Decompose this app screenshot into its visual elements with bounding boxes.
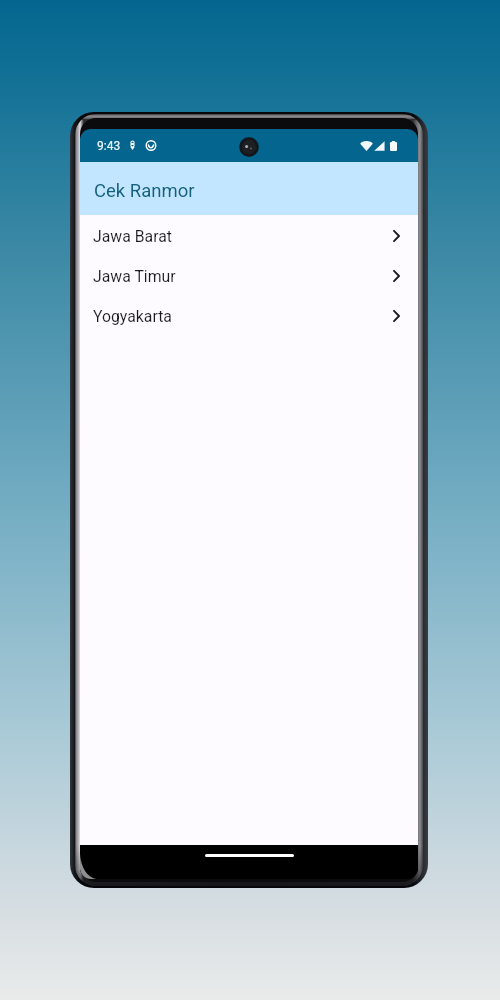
staticText: Jawa Barat	[93, 227, 172, 246]
button[interactable]: Yogyakarta	[80, 296, 418, 336]
button[interactable]: Jawa Timur	[80, 256, 418, 296]
staticText: Cek Ranmor	[94, 180, 195, 202]
staticText: Yogyakarta	[93, 307, 172, 326]
staticText: 9:43	[97, 139, 121, 153]
button[interactable]: Jawa Barat	[80, 216, 418, 256]
staticText: Jawa Timur	[93, 267, 176, 286]
